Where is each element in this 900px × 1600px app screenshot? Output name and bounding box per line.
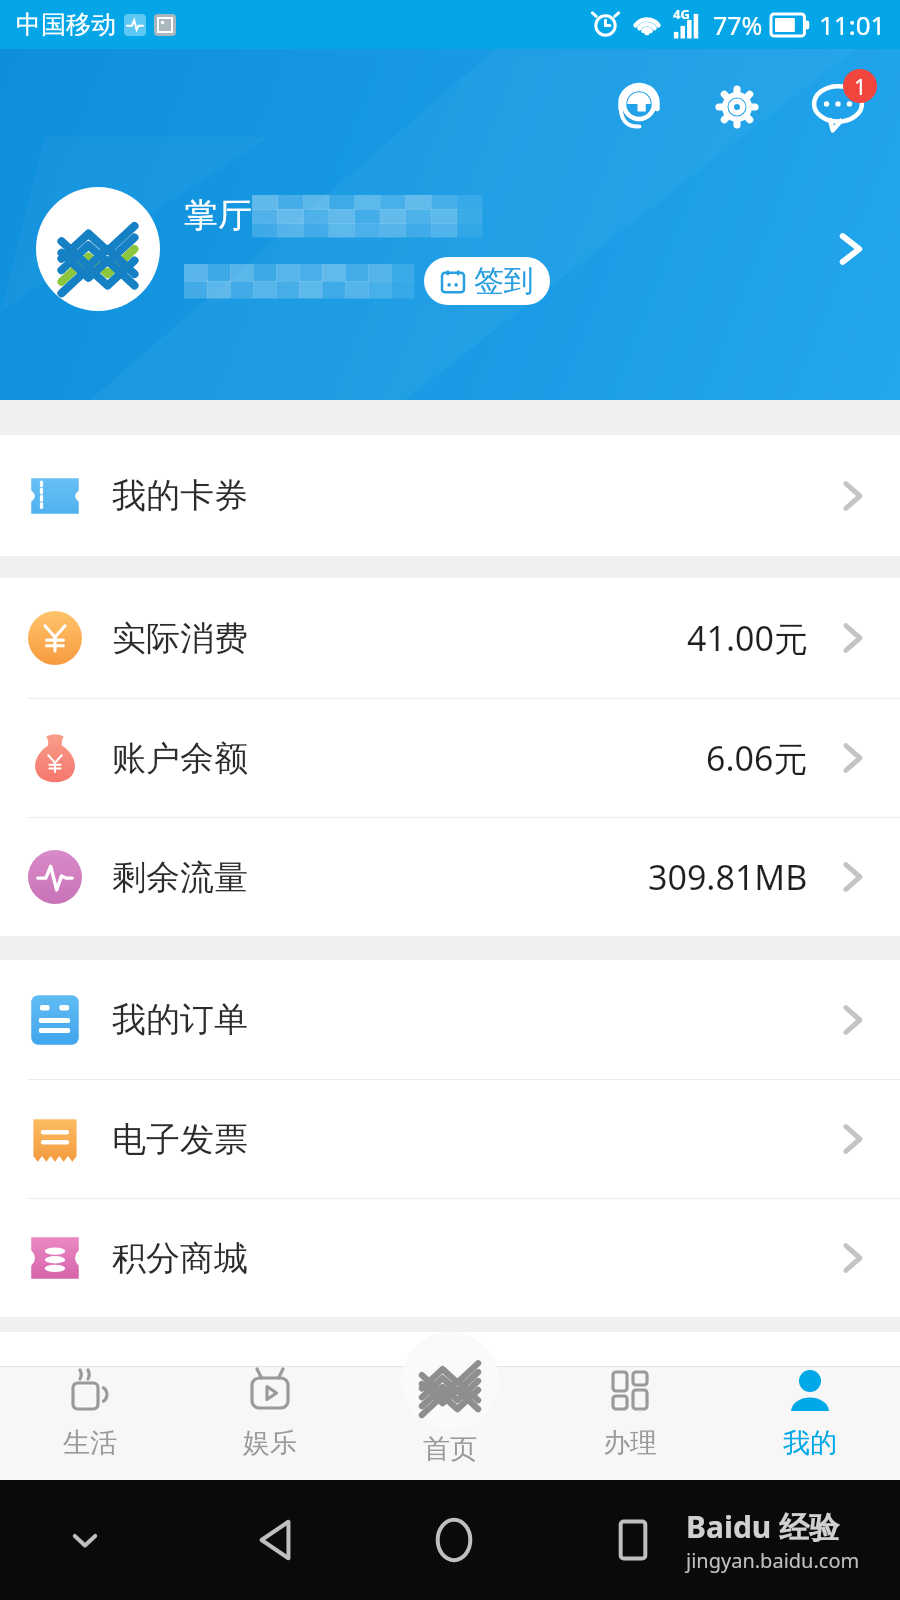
staticText: 我的	[783, 1426, 837, 1460]
staticText: 41.00元	[687, 615, 808, 661]
staticText: 77%	[713, 8, 763, 42]
staticText: 账户余额	[112, 737, 248, 780]
button[interactable]: 我的	[720, 1362, 900, 1480]
button[interactable]: 电子发票	[0, 1080, 900, 1198]
button[interactable]: 掌厅	[0, 187, 900, 311]
staticText: 积分商城	[112, 1237, 248, 1280]
button[interactable]: Hide	[40, 1480, 130, 1600]
button[interactable]: Settings	[706, 76, 768, 138]
button[interactable]: 积分商城	[0, 1199, 900, 1317]
staticText: 首页	[423, 1432, 477, 1466]
staticText: 我的订单	[112, 998, 248, 1041]
button[interactable]: 实际消费	[0, 578, 900, 698]
button[interactable]: Back	[240, 1505, 310, 1575]
staticText: jingyan.baidu.com	[686, 1547, 860, 1574]
staticText: 娱乐	[243, 1426, 297, 1460]
button[interactable]: Recents	[598, 1505, 668, 1575]
staticText: 4G	[673, 5, 690, 23]
staticText: 电子发票	[112, 1118, 248, 1161]
staticText: 6.06元	[706, 735, 808, 781]
staticText: 11:01	[819, 7, 886, 42]
button[interactable]: 生活	[0, 1362, 180, 1480]
button[interactable]: 娱乐	[180, 1362, 360, 1480]
staticText: 实际消费	[112, 617, 248, 660]
staticText: 1	[854, 71, 867, 101]
staticText: 剩余流量	[112, 856, 248, 899]
staticText: 办理	[603, 1426, 657, 1460]
staticText: 中国移动	[16, 9, 116, 40]
button[interactable]: 剩余流量	[0, 818, 900, 936]
button[interactable]: 我的卡券	[0, 435, 900, 556]
button[interactable]: 我的订单	[0, 960, 900, 1079]
button[interactable]: 签到	[424, 257, 550, 305]
staticText: 签到	[474, 262, 534, 300]
staticText: 掌厅	[184, 194, 252, 237]
button[interactable]: Messages	[802, 71, 874, 143]
button[interactable]: 账户余额	[0, 699, 900, 817]
staticText: Baidu 经验	[686, 1506, 840, 1547]
staticText: 309.81MB	[648, 854, 808, 900]
button[interactable]: Customer service	[608, 76, 670, 138]
staticText: 我的卡券	[112, 474, 248, 517]
button[interactable]: 首页	[360, 1332, 540, 1480]
button[interactable]: 办理	[540, 1362, 720, 1480]
staticText: 生活	[63, 1426, 117, 1460]
button[interactable]: Home	[419, 1505, 489, 1575]
